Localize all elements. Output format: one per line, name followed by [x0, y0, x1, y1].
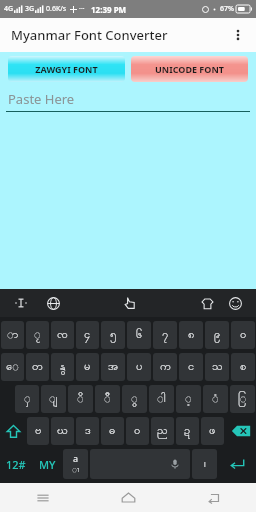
- staticText: ၆: [136, 327, 143, 343]
- button[interactable]: စ: [231, 353, 255, 381]
- button[interactable]: ြ: [230, 385, 255, 413]
- staticText: 4G: [4, 4, 14, 14]
- button[interactable]: ေ: [1, 353, 24, 381]
- button[interactable]: ZAWGYI FONT: [8, 56, 125, 82]
- staticText: ာ: [7, 327, 19, 343]
- staticText: ၀: [240, 327, 247, 343]
- button[interactable]: Shift: [1, 417, 25, 445]
- staticText: ဒ: [85, 423, 91, 439]
- button[interactable]: ၇: [153, 321, 177, 349]
- button[interactable]: ဓ: [101, 417, 124, 445]
- button[interactable]: Change language: [42, 292, 64, 314]
- button[interactable]: ဝ: [126, 417, 149, 445]
- staticText: တ: [32, 359, 43, 375]
- staticText: ှ: [24, 391, 31, 407]
- button[interactable]: ႂ: [26, 321, 49, 349]
- staticText: နွ: [60, 359, 66, 375]
- button[interactable]: More options: [224, 21, 252, 49]
- staticText: ၉: [214, 327, 221, 343]
- button[interactable]: Back: [171, 483, 256, 512]
- staticText: ၇: [162, 327, 169, 343]
- button[interactable]: ဒ: [76, 417, 99, 445]
- staticText: Paste Here: [8, 90, 75, 108]
- staticText: ၸ: [57, 327, 68, 343]
- button[interactable]: MY: [33, 449, 61, 479]
- button[interactable]: က: [153, 353, 177, 381]
- button[interactable]: UNICODE FONT: [131, 56, 248, 82]
- staticText: ျ: [49, 391, 58, 407]
- button[interactable]: ိ: [68, 385, 93, 413]
- staticText: 0.6K/s: [46, 4, 67, 14]
- button[interactable]: ံ: [203, 385, 228, 413]
- button[interactable]: ျ: [41, 385, 66, 413]
- button[interactable]: င: [179, 353, 203, 381]
- button[interactable]: Cursor: [10, 292, 32, 314]
- button[interactable]: သ: [205, 353, 229, 381]
- button[interactable]: ဍ: [176, 417, 199, 445]
- button[interactable]: Space: [90, 449, 190, 479]
- staticText: က: [160, 359, 171, 375]
- button[interactable]: ၸ: [51, 321, 74, 349]
- button[interactable]: ွ: [122, 385, 147, 413]
- staticText: ၢ: [72, 464, 80, 476]
- staticText: 12#: [6, 457, 26, 472]
- staticText: Myanmar Font Converter: [11, 26, 168, 44]
- staticText: ီ: [104, 391, 111, 407]
- button[interactable]: Recents: [0, 483, 86, 512]
- staticText: အ: [108, 359, 119, 375]
- staticText: ဍ: [184, 423, 191, 439]
- button[interactable]: အ: [101, 353, 125, 381]
- staticText: ဓ: [109, 423, 116, 439]
- button[interactable]: ဃ: [51, 417, 74, 445]
- button[interactable]: Backspace: [226, 417, 255, 445]
- staticText: ိ: [77, 391, 84, 407]
- button[interactable]: ၅: [101, 321, 125, 349]
- button[interactable]: 12#: [1, 449, 31, 479]
- button[interactable]: မ: [76, 353, 99, 381]
- staticText: ြ: [238, 391, 247, 407]
- staticText: ၊: [204, 456, 206, 472]
- staticText: ဝ: [134, 423, 141, 439]
- staticText: 12:39 PM: [91, 4, 127, 15]
- button[interactable]: ၀: [231, 321, 255, 349]
- button[interactable]: နွ: [51, 353, 74, 381]
- staticText: ဖ: [209, 423, 216, 439]
- staticText: ေ: [6, 359, 20, 375]
- staticText: ၈: [188, 327, 195, 343]
- staticText: a: [73, 452, 79, 464]
- button[interactable]: Home: [86, 483, 171, 512]
- button[interactable]: Enter: [219, 449, 255, 479]
- button[interactable]: ၊: [192, 449, 217, 479]
- staticText: MY: [39, 457, 56, 472]
- staticText: ZAWGYI FONT: [35, 63, 98, 75]
- button[interactable]: ၈: [179, 321, 203, 349]
- button[interactable]: ၉: [205, 321, 229, 349]
- button[interactable]: ပ: [127, 353, 151, 381]
- button[interactable]: ဖ: [201, 417, 224, 445]
- staticText: ံ: [212, 391, 219, 407]
- button[interactable]: Handwriting: [119, 292, 141, 314]
- staticText: UNICODE FONT: [155, 63, 224, 75]
- staticText: င: [188, 359, 195, 375]
- button[interactable]: Paste Here: [6, 90, 250, 112]
- staticText: ပ: [136, 359, 143, 375]
- button[interactable]: Theme: [196, 292, 218, 314]
- staticText: မ: [84, 359, 91, 375]
- button[interactable]: ့: [176, 385, 201, 413]
- button[interactable]: ှ: [15, 385, 39, 413]
- button[interactable]: ီ: [95, 385, 120, 413]
- staticText: ့: [185, 391, 192, 407]
- button[interactable]: ၄: [76, 321, 99, 349]
- button[interactable]: ၆: [127, 321, 151, 349]
- button[interactable]: ာ: [1, 321, 24, 349]
- staticText: 67%: [220, 4, 234, 14]
- staticText: 3G: [25, 4, 35, 14]
- button[interactable]: တ: [26, 353, 49, 381]
- button[interactable]: ါ: [149, 385, 174, 413]
- button[interactable]: ည: [151, 417, 174, 445]
- staticText: ည: [157, 423, 168, 439]
- staticText: ဗ: [35, 423, 42, 439]
- button[interactable]: Emoji: [224, 292, 246, 314]
- button[interactable]: a: [63, 449, 88, 479]
- button[interactable]: ဗ: [27, 417, 49, 445]
